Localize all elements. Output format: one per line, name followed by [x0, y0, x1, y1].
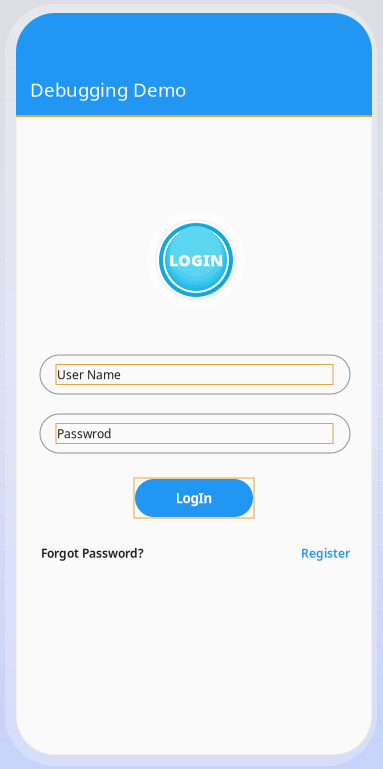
button[interactable]: LogIn [134, 478, 254, 518]
button[interactable]: Passwrod [40, 414, 350, 453]
staticText: Passwrod [57, 425, 111, 441]
button[interactable]: User Name [40, 355, 350, 394]
staticText: User Name [57, 366, 121, 382]
staticText: Forgot Password? [41, 545, 144, 561]
staticText: LogIn [175, 489, 212, 507]
staticText: Debugging Demo [30, 77, 186, 102]
staticText: Register [301, 545, 350, 561]
button[interactable]: Register [301, 545, 350, 561]
button[interactable]: Forgot Password? [41, 545, 144, 561]
staticText: LOGIN [169, 249, 223, 271]
